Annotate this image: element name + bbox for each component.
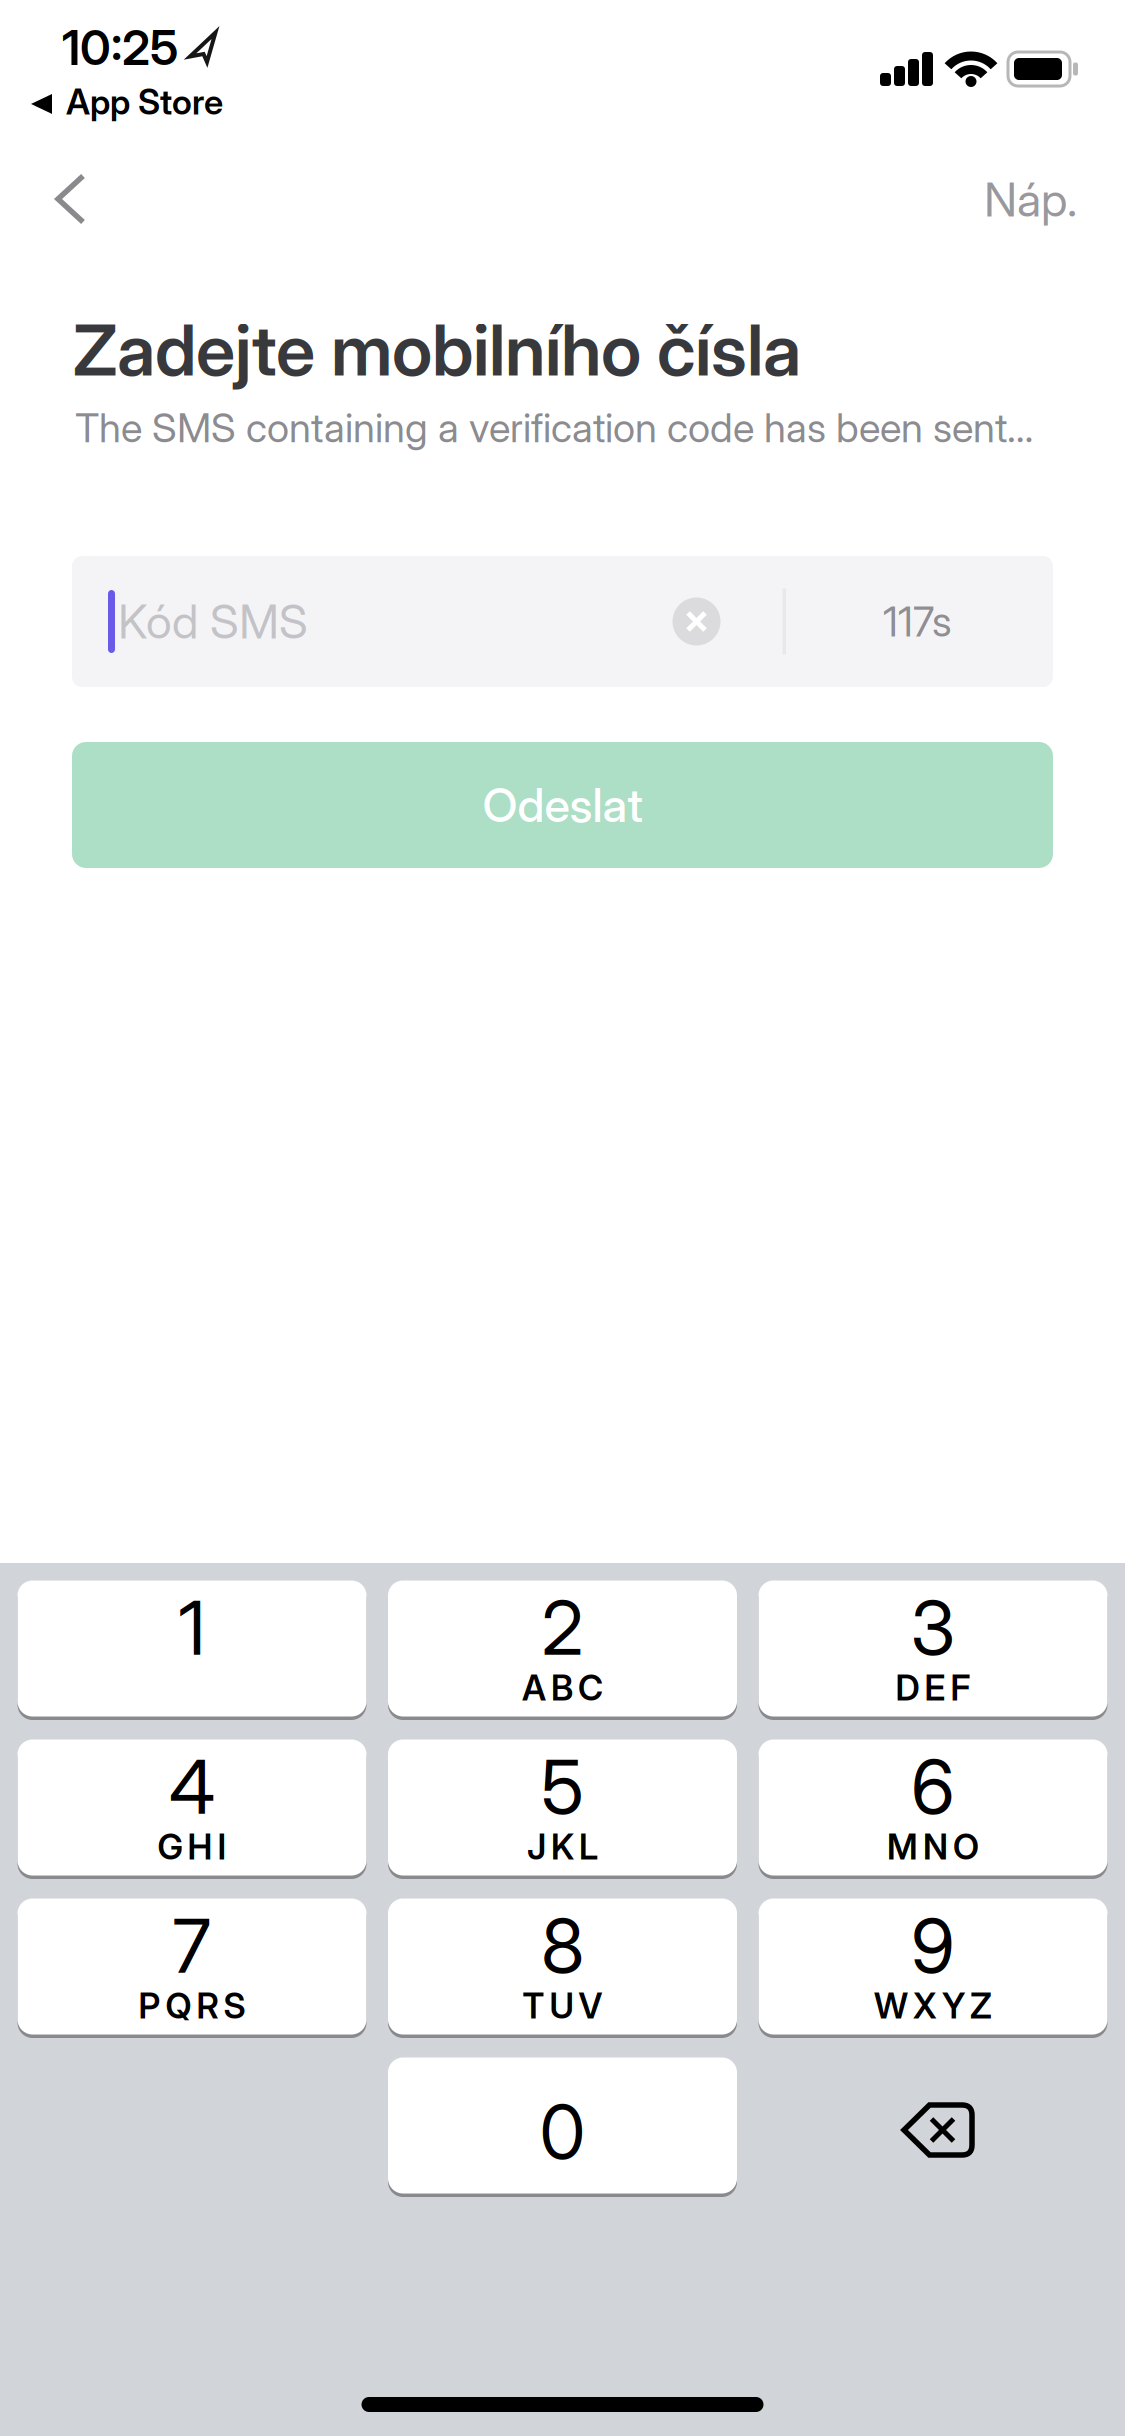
- button[interactable]: 7: [17, 1898, 366, 2034]
- staticText: App Store: [66, 77, 223, 127]
- staticText: 10:25: [62, 13, 178, 82]
- button[interactable]: App Store: [31, 77, 223, 127]
- staticText: 3: [910, 1574, 955, 1681]
- staticText: P Q R S: [138, 1981, 245, 2031]
- staticText: 8: [541, 1892, 584, 1999]
- button[interactable]: 9: [758, 1898, 1107, 2034]
- button[interactable]: 0: [388, 2057, 737, 2193]
- button[interactable]: 1: [17, 1580, 366, 1716]
- button[interactable]: 4: [17, 1739, 366, 1875]
- button[interactable]: 5: [388, 1739, 737, 1875]
- staticText: Náp.: [984, 166, 1077, 233]
- staticText: M N O: [887, 1822, 979, 1872]
- staticText: 5: [541, 1733, 584, 1840]
- staticText: Odeslat: [482, 771, 642, 839]
- staticText: 4: [169, 1733, 215, 1840]
- button[interactable]: 3: [758, 1580, 1107, 1716]
- staticText: 0: [539, 2078, 585, 2185]
- staticText: 117s: [883, 592, 952, 651]
- staticText: Kód SMS: [118, 588, 308, 655]
- staticText: W X Y Z: [874, 1981, 992, 2031]
- staticText: J K L: [527, 1822, 598, 1872]
- staticText: 7: [172, 1892, 211, 1999]
- button[interactable]: Delete: [758, 2057, 1107, 2193]
- button[interactable]: Odeslat: [72, 742, 1053, 868]
- staticText: D E F: [895, 1663, 970, 1713]
- staticText: T U V: [522, 1981, 602, 2031]
- button[interactable]: 2: [388, 1580, 737, 1716]
- button[interactable]: Clear: [672, 597, 720, 645]
- staticText: 2: [541, 1574, 583, 1681]
- staticText: 9: [911, 1892, 955, 1999]
- button[interactable]: Back: [42, 172, 98, 226]
- staticText: A B C: [522, 1663, 603, 1713]
- staticText: The SMS containing a verification code h…: [75, 399, 1033, 457]
- staticText: Zadejte mobilního čísla: [73, 299, 801, 401]
- button[interactable]: 8: [388, 1898, 737, 2034]
- button[interactable]: 6: [758, 1739, 1107, 1875]
- staticText: G H I: [157, 1822, 226, 1872]
- staticText: 1: [178, 1574, 205, 1681]
- button[interactable]: Náp.: [984, 166, 1077, 233]
- staticText: 6: [911, 1733, 955, 1840]
